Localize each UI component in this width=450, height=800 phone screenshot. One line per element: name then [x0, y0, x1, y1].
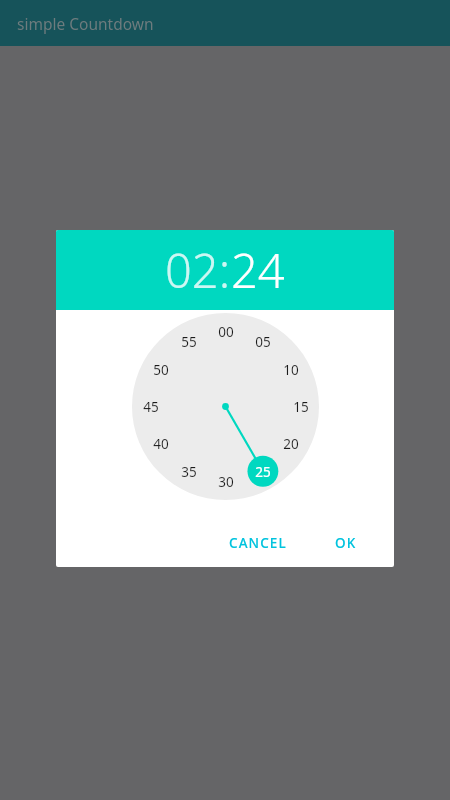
staticText: 50: [153, 361, 169, 379]
staticText: 35: [181, 463, 197, 481]
staticText: 10: [283, 361, 299, 379]
staticText: OK: [335, 534, 357, 552]
button[interactable]: 02:: [56, 230, 394, 310]
button[interactable]: OK: [325, 526, 367, 560]
staticText: 45: [143, 398, 159, 416]
button[interactable]: Minute picker, 25 minutes: [132, 313, 319, 500]
button[interactable]: Click here to set the time: [0, 300, 450, 329]
staticText: 40: [153, 435, 169, 453]
staticText: 05: [255, 333, 271, 351]
button[interactable]: CANCEL: [219, 526, 297, 560]
staticText: 00: [218, 323, 234, 341]
staticText: simple Countdown: [17, 13, 154, 34]
staticText: 15: [293, 398, 309, 416]
staticText: 24: [231, 238, 285, 302]
staticText: Click here to set the time: [100, 300, 351, 329]
staticText: 55: [181, 333, 197, 351]
staticText: 02:: [165, 238, 231, 302]
staticText: CANCEL: [229, 534, 287, 552]
staticText: 30: [218, 473, 234, 491]
staticText: 25: [255, 463, 271, 481]
staticText: 20: [283, 435, 299, 453]
